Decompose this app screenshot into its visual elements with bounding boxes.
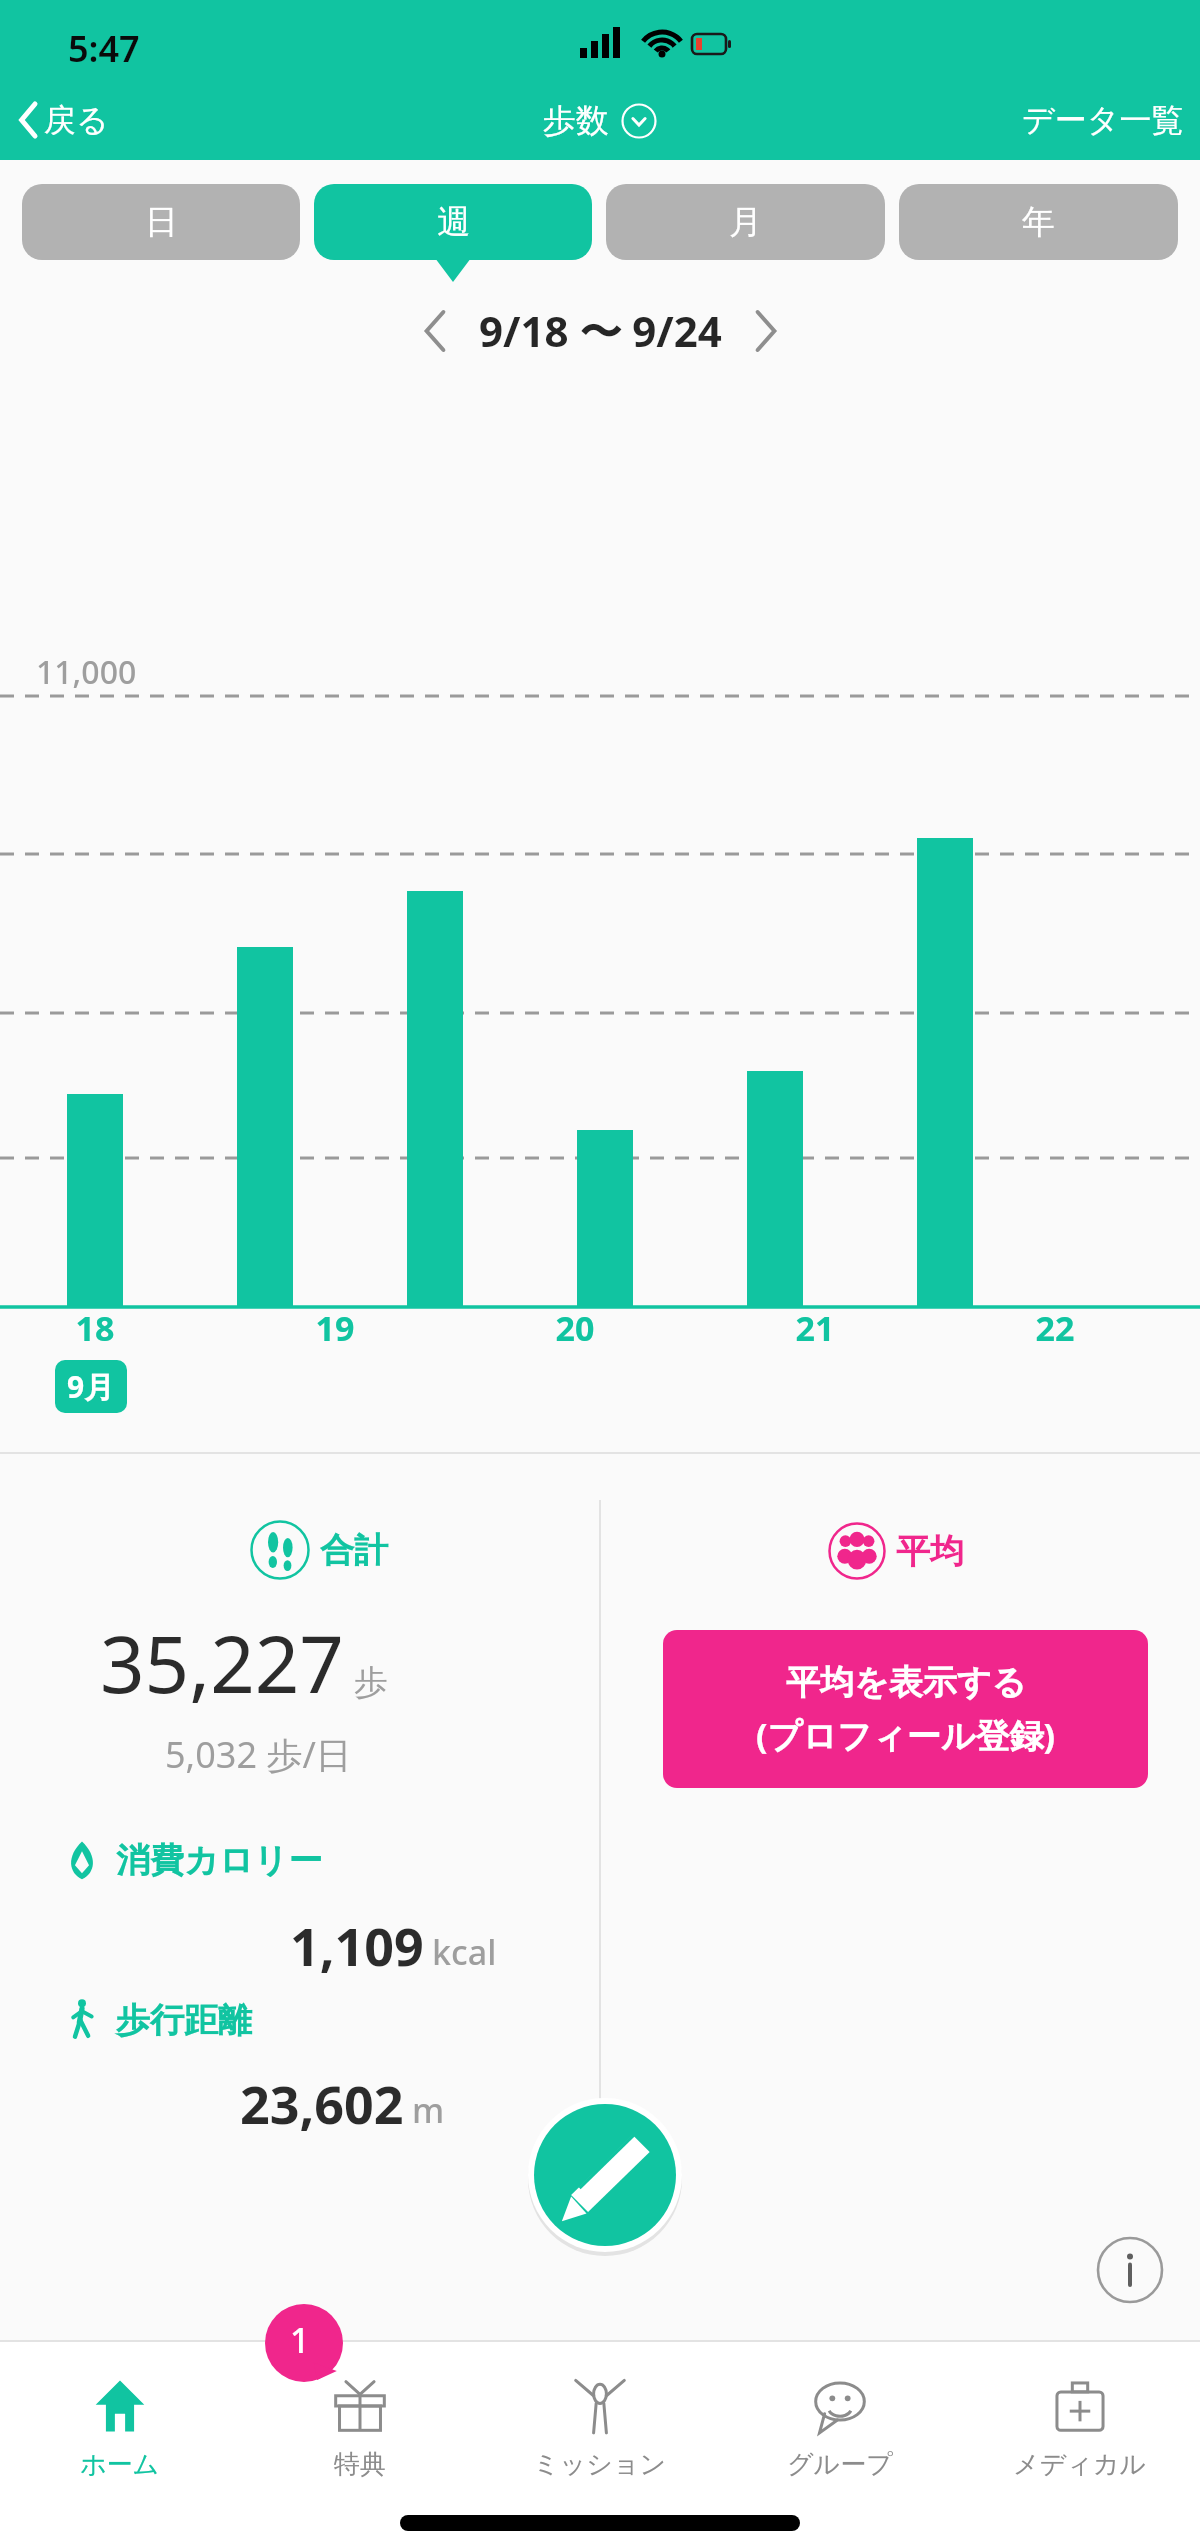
- staticText: 合計: [320, 1529, 388, 1572]
- staticText: 23,602: [240, 2068, 404, 2139]
- staticText: 週: [437, 201, 470, 243]
- button[interactable]: グループ: [720, 2368, 960, 2487]
- staticText: kcal: [432, 1929, 497, 1975]
- staticText: 平均: [896, 1530, 964, 1573]
- staticText: 年: [1022, 201, 1055, 243]
- button[interactable]: Previous period: [421, 306, 449, 356]
- button[interactable]: 平均を表示する: [663, 1630, 1148, 1788]
- button[interactable]: 特典: [240, 2368, 480, 2487]
- staticText: 35,227: [100, 1610, 344, 1716]
- staticText: 歩: [354, 1661, 388, 1704]
- staticText: 平均を表示する: [786, 1661, 1027, 1704]
- staticText: 19: [300, 1305, 370, 1351]
- button[interactable]: 月: [606, 184, 885, 260]
- button[interactable]: 戻る: [8, 92, 119, 148]
- staticText: (プロフィール登録): [756, 1712, 1056, 1758]
- staticText: 11,000: [36, 650, 137, 694]
- staticText: 消費カロリー: [116, 1839, 323, 1882]
- staticText: 歩数: [543, 100, 609, 142]
- staticText: 月: [729, 201, 762, 243]
- staticText: 歩行距離: [116, 1999, 252, 2042]
- button[interactable]: Information: [1096, 2236, 1164, 2304]
- staticText: 5,032 歩/日: [165, 1730, 352, 1779]
- staticText: 18: [60, 1305, 130, 1351]
- staticText: 5:47: [68, 24, 140, 73]
- staticText: ホーム: [80, 2448, 160, 2481]
- staticText: 21: [780, 1305, 850, 1351]
- button[interactable]: 平均: [828, 1522, 964, 1580]
- button[interactable]: 日: [22, 184, 300, 260]
- staticText: ミッション: [533, 2448, 667, 2481]
- staticText: 9/18 〜 9/24: [479, 302, 722, 359]
- staticText: グループ: [787, 2448, 893, 2481]
- staticText: 1,109: [290, 1910, 424, 1981]
- staticText: 9月: [67, 1366, 115, 1407]
- staticText: 戻る: [44, 100, 109, 140]
- staticText: メディカル: [1013, 2448, 1147, 2481]
- button[interactable]: 歩数: [535, 92, 665, 150]
- staticText: 特典: [334, 2448, 386, 2481]
- button[interactable]: Edit: [528, 2098, 682, 2252]
- button[interactable]: メディカル: [960, 2368, 1200, 2487]
- staticText: 22: [1020, 1305, 1090, 1351]
- button[interactable]: ミッション: [480, 2368, 720, 2487]
- staticText: m: [412, 2087, 445, 2133]
- staticText: 20: [540, 1305, 610, 1351]
- button[interactable]: データ一覧: [1006, 92, 1200, 148]
- button[interactable]: 合計: [250, 1520, 388, 1580]
- button[interactable]: Next period: [752, 306, 780, 356]
- button[interactable]: 年: [899, 184, 1178, 260]
- staticText: 日: [145, 201, 178, 243]
- button[interactable]: ホーム: [0, 2368, 240, 2487]
- button[interactable]: 週: [314, 184, 592, 260]
- staticText: 1: [290, 2317, 310, 2363]
- button[interactable]: 歩行距離: [60, 1998, 252, 2042]
- button[interactable]: 消費カロリー: [60, 1838, 323, 1882]
